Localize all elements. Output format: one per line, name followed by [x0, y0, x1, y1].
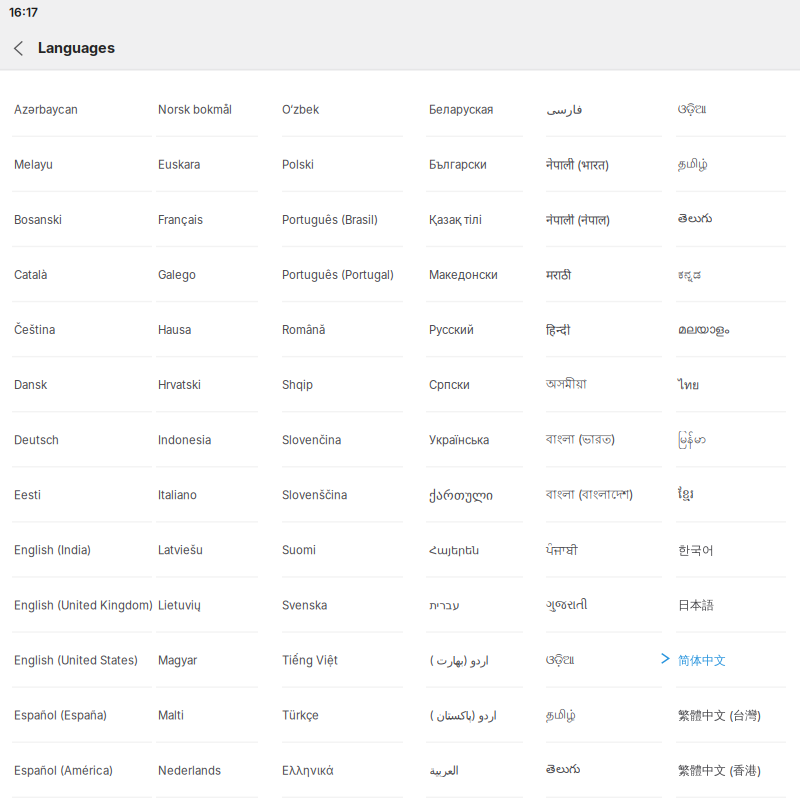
- button[interactable]: Ελληνικά: [282, 745, 403, 796]
- button[interactable]: English (India): [14, 525, 152, 576]
- button[interactable]: עברית: [429, 580, 523, 631]
- button[interactable]: Slovenčina: [282, 414, 403, 466]
- button[interactable]: Español (España): [14, 690, 152, 741]
- button[interactable]: 繁體中文 (香港): [678, 745, 786, 796]
- staticText: മലയാളം: [678, 324, 729, 336]
- button[interactable]: Español (América): [14, 745, 152, 796]
- button[interactable]: Русский: [429, 304, 523, 355]
- button[interactable]: Slovenščina: [282, 470, 403, 521]
- button[interactable]: မြန်မာ: [678, 414, 786, 466]
- button[interactable]: नेपाली (नेपाल): [546, 194, 662, 245]
- button[interactable]: Bosanski: [14, 194, 152, 245]
- button[interactable]: Shqip: [282, 359, 403, 411]
- staticText: Español (América): [14, 764, 113, 777]
- button[interactable]: Tiếng Việt: [282, 635, 403, 686]
- button[interactable]: Deutsch: [14, 414, 152, 466]
- staticText: Hausa: [158, 323, 191, 337]
- button[interactable]: தமிழ்: [546, 690, 662, 741]
- button[interactable]: Nederlands: [158, 745, 258, 796]
- button[interactable]: العربية: [429, 745, 523, 796]
- button[interactable]: Français: [158, 194, 258, 245]
- button[interactable]: తెలుగు: [678, 194, 786, 245]
- button[interactable]: Македонски: [429, 249, 523, 300]
- button[interactable]: ไทย: [678, 359, 786, 411]
- button[interactable]: Lietuvių: [158, 580, 258, 631]
- button[interactable]: हिन्दी: [546, 304, 662, 355]
- button[interactable]: فارسی: [546, 84, 662, 135]
- staticText: Azərbaycan: [14, 103, 78, 116]
- button[interactable]: Melayu: [14, 139, 152, 190]
- button[interactable]: 한국어: [678, 525, 786, 576]
- button[interactable]: Português (Brasil): [282, 194, 403, 245]
- button[interactable]: Languages: [36, 35, 117, 60]
- staticText: Bosanski: [14, 213, 62, 227]
- staticText: العربية: [429, 764, 458, 777]
- button[interactable]: Українська: [429, 414, 523, 466]
- staticText: اردو (بھارت ): [429, 653, 488, 667]
- button[interactable]: Azərbaycan: [14, 84, 152, 135]
- button[interactable]: Română: [282, 304, 403, 355]
- staticText: O‘zbek: [282, 103, 319, 116]
- button[interactable]: Қазақ тілі: [429, 194, 523, 245]
- button[interactable]: ಕನ್ನಡ: [678, 249, 786, 300]
- button[interactable]: اردو (بھارت ): [429, 635, 523, 686]
- button[interactable]: Suomi: [282, 525, 403, 576]
- button[interactable]: اردو (پاکستان ): [429, 690, 523, 741]
- button[interactable]: O‘zbek: [282, 84, 403, 135]
- button[interactable]: नेपाली (भारत): [546, 139, 662, 190]
- button[interactable]: ქართული: [429, 470, 523, 521]
- button[interactable]: Čeština: [14, 304, 152, 355]
- button[interactable]: অসমীয়া: [546, 359, 662, 411]
- button[interactable]: Svenska: [282, 580, 403, 631]
- staticText: Malti: [158, 709, 184, 722]
- button[interactable]: বাংলা (ভারত): [546, 414, 662, 466]
- button[interactable]: Català: [14, 249, 152, 300]
- button[interactable]: Euskara: [158, 139, 258, 190]
- button[interactable]: తెలుగు: [546, 745, 662, 796]
- button[interactable]: ଓଡ଼ିଆ: [546, 635, 662, 686]
- staticText: 日本語: [678, 598, 714, 613]
- staticText: Norsk bokmål: [158, 103, 232, 116]
- button[interactable]: Italiano: [158, 470, 258, 521]
- button[interactable]: 简体中文: [678, 635, 786, 686]
- button[interactable]: ਪੰਜਾਬੀ: [546, 525, 662, 576]
- button[interactable]: Беларуская: [429, 84, 523, 135]
- staticText: 한국어: [678, 543, 714, 558]
- button[interactable]: Polski: [282, 139, 403, 190]
- button[interactable]: ខ្មែរ: [678, 470, 786, 521]
- button[interactable]: Back: [5, 36, 31, 62]
- staticText: Deutsch: [14, 433, 59, 447]
- button[interactable]: Indonesia: [158, 414, 258, 466]
- staticText: Euskara: [158, 158, 200, 171]
- button[interactable]: 日本語: [678, 580, 786, 631]
- button[interactable]: Türkçe: [282, 690, 403, 741]
- button[interactable]: Hrvatski: [158, 359, 258, 411]
- button[interactable]: മലയാളം: [678, 304, 786, 355]
- button[interactable]: Galego: [158, 249, 258, 300]
- button[interactable]: Dansk: [14, 359, 152, 411]
- button[interactable]: Հայերեն: [429, 525, 523, 576]
- button[interactable]: Malti: [158, 690, 258, 741]
- button[interactable]: বাংলা (বাংলাদেশ): [546, 470, 662, 521]
- button[interactable]: मराठी: [546, 249, 662, 300]
- staticText: Български: [429, 158, 487, 171]
- button[interactable]: English (United States): [14, 635, 152, 686]
- staticText: English (United States): [14, 653, 138, 667]
- button[interactable]: தமிழ்: [678, 139, 786, 190]
- button[interactable]: Magyar: [158, 635, 258, 686]
- button[interactable]: 繁體中文 (台灣): [678, 690, 786, 741]
- button[interactable]: Eesti: [14, 470, 152, 521]
- button[interactable]: Hausa: [158, 304, 258, 355]
- button[interactable]: ଓଡ଼ିଆ: [678, 84, 786, 135]
- staticText: Português (Brasil): [282, 213, 378, 227]
- staticText: Español (España): [14, 709, 107, 722]
- button[interactable]: English (United Kingdom): [14, 580, 152, 631]
- button[interactable]: Português (Portugal): [282, 249, 403, 300]
- button[interactable]: Latviešu: [158, 525, 258, 576]
- button[interactable]: Српски: [429, 359, 523, 411]
- button[interactable]: Български: [429, 139, 523, 190]
- button[interactable]: Norsk bokmål: [158, 84, 258, 135]
- staticText: Türkçe: [282, 709, 319, 722]
- staticText: Italiano: [158, 488, 197, 502]
- button[interactable]: ગુજરાતી: [546, 580, 662, 631]
